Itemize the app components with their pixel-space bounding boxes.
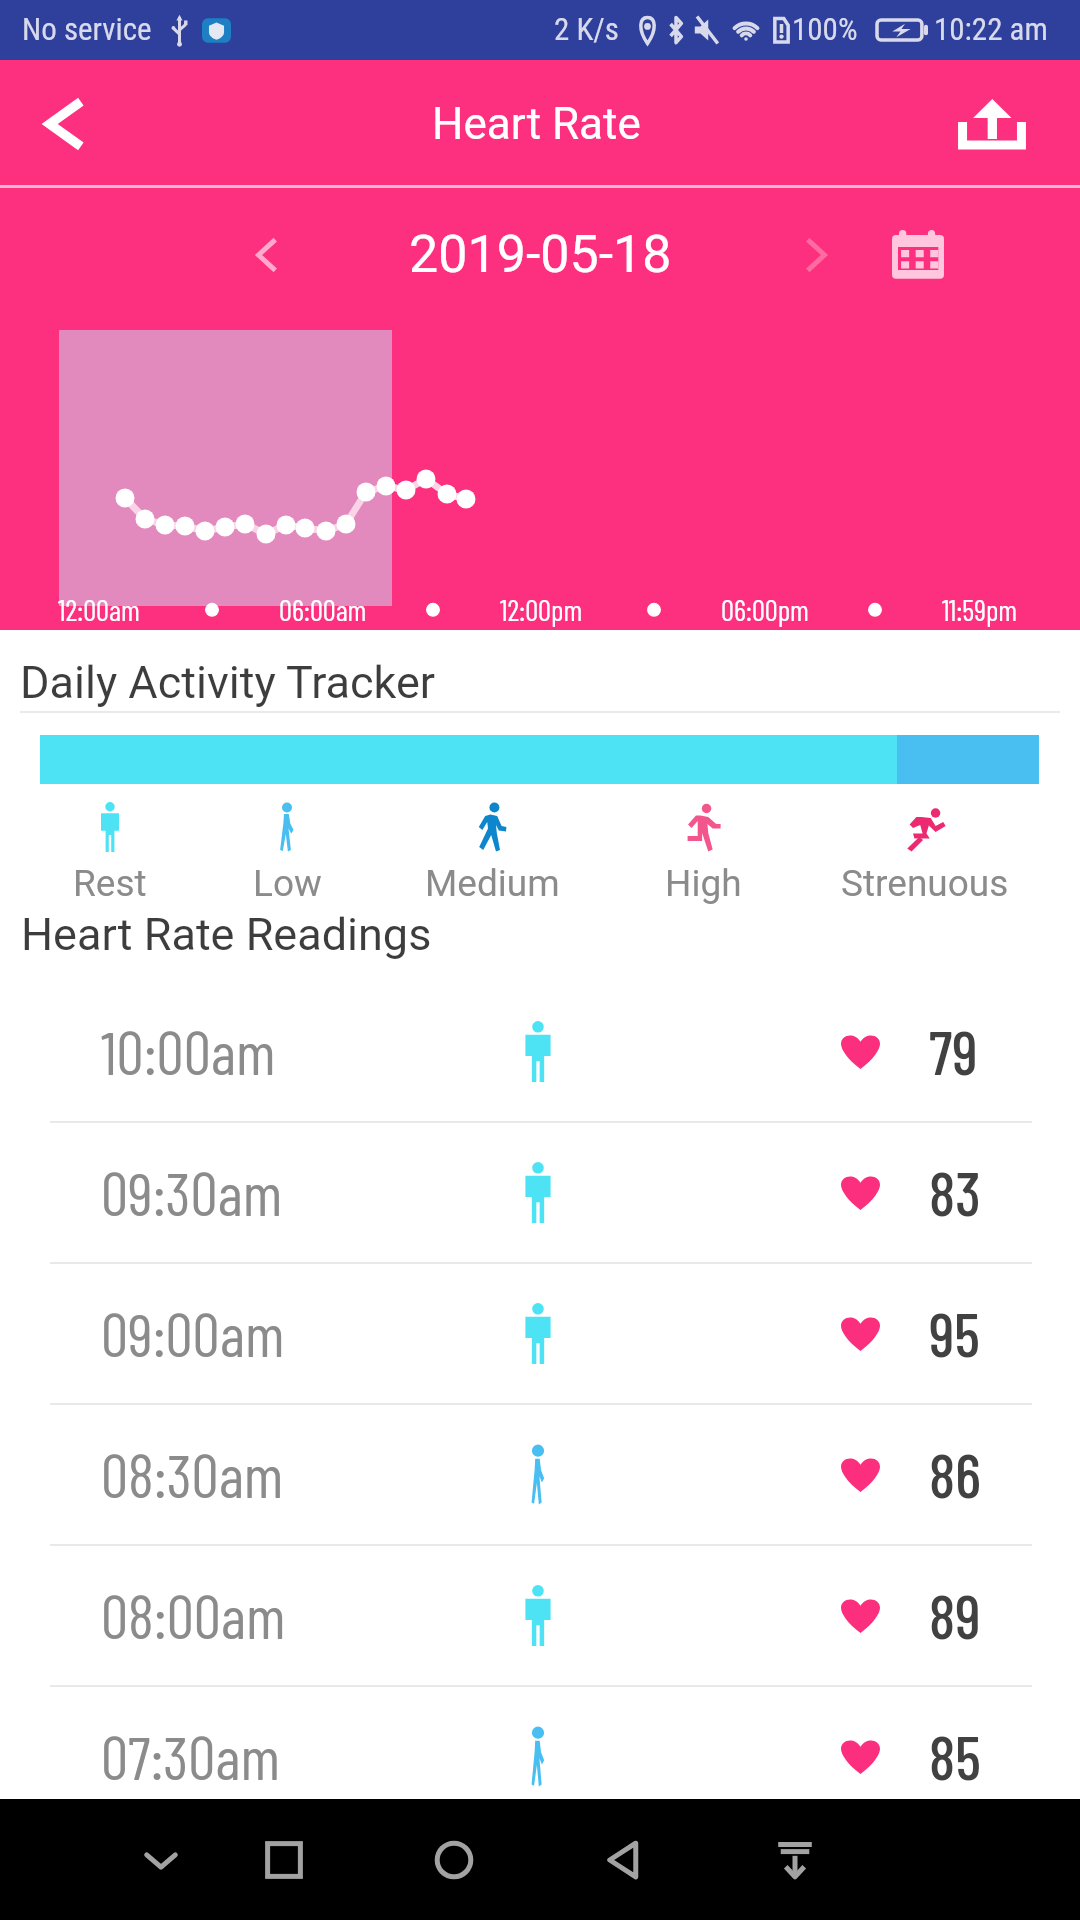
staticText: 10:22 am: [934, 11, 1048, 47]
staticText: 2019-05-18: [409, 224, 672, 285]
staticText: 06:00am: [279, 592, 367, 627]
staticText: Strenuous: [841, 862, 1009, 905]
staticText: 10:00am: [101, 1014, 276, 1087]
staticText: 12:00pm: [500, 592, 583, 627]
staticText: 79: [929, 1014, 978, 1087]
button[interactable]: High: [613, 802, 793, 905]
staticText: 08:30am: [101, 1437, 284, 1510]
button[interactable]: Notifications: [753, 1818, 837, 1902]
button[interactable]: Recent apps: [242, 1818, 326, 1902]
button[interactable]: Medium: [402, 802, 582, 905]
staticText: Daily Activity Tracker: [20, 656, 436, 709]
button[interactable]: 09:30am: [0, 1123, 1080, 1264]
button[interactable]: Previous day: [235, 224, 297, 286]
button[interactable]: Next day: [786, 224, 848, 286]
button[interactable]: Hide keyboard: [119, 1818, 203, 1902]
button[interactable]: Rest: [20, 802, 200, 905]
button[interactable]: Back: [28, 89, 98, 159]
staticText: 83: [929, 1155, 981, 1228]
staticText: 08:00am: [101, 1578, 286, 1651]
staticText: 85: [929, 1719, 981, 1792]
staticText: 86: [929, 1437, 981, 1510]
staticText: 2 K/s: [554, 11, 619, 47]
staticText: 09:30am: [101, 1155, 283, 1228]
staticText: Medium: [425, 862, 560, 905]
staticText: 11:59pm: [942, 592, 1018, 627]
button[interactable]: Choose date: [892, 230, 944, 280]
staticText: 12:00am: [58, 592, 140, 627]
staticText: Low: [253, 862, 322, 905]
button[interactable]: 07:30am: [0, 1687, 1080, 1828]
button[interactable]: Back: [582, 1818, 666, 1902]
button[interactable]: Low: [197, 802, 377, 905]
button[interactable]: 08:30am: [0, 1405, 1080, 1546]
button[interactable]: Home: [412, 1818, 496, 1902]
staticText: 100%: [792, 11, 858, 47]
staticText: 09:00am: [101, 1296, 285, 1369]
button[interactable]: 08:00am: [0, 1546, 1080, 1687]
staticText: No service: [22, 11, 152, 47]
staticText: 89: [929, 1578, 981, 1651]
staticText: 07:30am: [101, 1719, 280, 1792]
staticText: 06:00pm: [721, 592, 809, 627]
button[interactable]: Strenuous: [835, 802, 1015, 905]
button[interactable]: 10:00am: [0, 982, 1080, 1123]
staticText: 95: [929, 1296, 980, 1369]
staticText: Heart Rate Readings: [21, 908, 432, 961]
button[interactable]: Share: [961, 99, 1023, 149]
staticText: High: [665, 862, 742, 905]
staticText: Heart Rate: [432, 98, 641, 150]
staticText: Rest: [73, 862, 147, 905]
button[interactable]: 09:00am: [0, 1264, 1080, 1405]
